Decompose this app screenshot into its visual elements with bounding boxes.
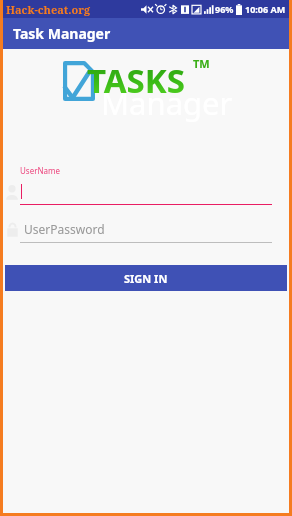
staticText: 10:06 AM bbox=[245, 3, 286, 15]
staticText: Hack-cheat.org bbox=[6, 2, 91, 17]
button[interactable]: SIGN IN bbox=[5, 265, 287, 291]
staticText: 96% bbox=[215, 3, 234, 15]
staticText: Task Manager bbox=[13, 24, 111, 43]
staticText: SIGN IN bbox=[124, 271, 168, 286]
staticText: TM bbox=[193, 56, 210, 71]
button[interactable]: UserPassword bbox=[3, 219, 289, 243]
staticText: TASKS bbox=[87, 58, 185, 103]
staticText: UserPassword bbox=[24, 221, 105, 237]
staticText: Manager bbox=[101, 82, 233, 124]
button[interactable]: UserName bbox=[3, 165, 289, 205]
staticText: UserName bbox=[20, 165, 61, 176]
